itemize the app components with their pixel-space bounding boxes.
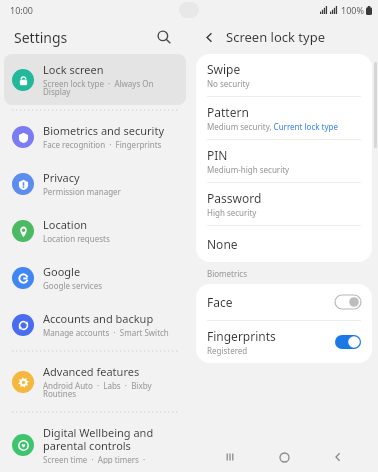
button[interactable]: Accounts and backup xyxy=(0,303,190,346)
staticText: Accounts and backup xyxy=(43,311,154,326)
button[interactable]: PIN xyxy=(196,140,372,182)
staticText: Privacy xyxy=(43,170,80,185)
staticText: Location requests xyxy=(43,233,110,244)
staticText: Location xyxy=(43,217,88,232)
button[interactable]: Back xyxy=(196,24,222,50)
staticText: Google services xyxy=(43,280,103,291)
staticText: Fingerprints xyxy=(207,328,276,344)
staticText: 10:00 xyxy=(10,4,34,16)
staticText: High security xyxy=(207,207,257,218)
button[interactable]: Privacy xyxy=(0,162,190,205)
staticText: Google xyxy=(43,264,81,279)
staticText: None xyxy=(207,236,238,252)
button[interactable]: Recents xyxy=(216,443,244,471)
button[interactable]: Google xyxy=(0,256,190,299)
button[interactable]: Advanced features xyxy=(0,356,190,407)
button[interactable]: Face xyxy=(196,284,372,320)
button[interactable]: Password xyxy=(196,183,372,225)
button[interactable]: Location xyxy=(0,209,190,252)
staticText: Face recognition · Fingerprints xyxy=(43,139,162,150)
staticText: No security xyxy=(207,78,250,89)
staticText: Pattern xyxy=(207,104,249,120)
staticText: Advanced features xyxy=(43,364,140,379)
button[interactable]: Lock screen xyxy=(4,54,186,105)
staticText: Swipe xyxy=(207,61,241,77)
staticText: Medium security, Current lock type xyxy=(207,121,338,132)
staticText: Registered xyxy=(207,345,248,356)
button[interactable]: Swipe xyxy=(196,54,372,96)
staticText: Permission manager xyxy=(43,186,121,197)
staticText: Password xyxy=(207,190,262,206)
staticText: Medium-high security xyxy=(207,164,290,175)
staticText: Manage accounts · Smart Switch xyxy=(43,327,169,338)
staticText: Lock screen xyxy=(43,62,104,77)
button[interactable]: Search xyxy=(152,25,176,49)
button[interactable]: Pattern xyxy=(196,97,372,139)
staticText: Biometrics xyxy=(207,268,248,279)
staticText: PIN xyxy=(207,147,228,163)
button[interactable]: Home xyxy=(270,443,298,471)
staticText: 100% xyxy=(341,4,364,16)
button[interactable]: Fingerprints xyxy=(196,321,372,363)
staticText: Biometrics and security xyxy=(43,123,164,138)
staticText: Settings xyxy=(14,28,68,47)
staticText: Screen lock type xyxy=(226,28,325,46)
staticText: Digital Wellbeing and parental controls xyxy=(43,425,178,453)
button[interactable]: Biometrics and security xyxy=(0,115,190,158)
button[interactable]: Back xyxy=(324,443,352,471)
staticText: Android Auto · Labs · Bixby Routines xyxy=(43,380,178,399)
staticText: Screen lock type · Always On Display xyxy=(43,78,178,97)
staticText: Face xyxy=(207,294,233,310)
button[interactable]: None xyxy=(196,226,372,262)
button[interactable]: Digital Wellbeing and parental controls xyxy=(0,417,190,472)
staticText: Screen time · App timers · Bedtime mode xyxy=(43,454,178,464)
